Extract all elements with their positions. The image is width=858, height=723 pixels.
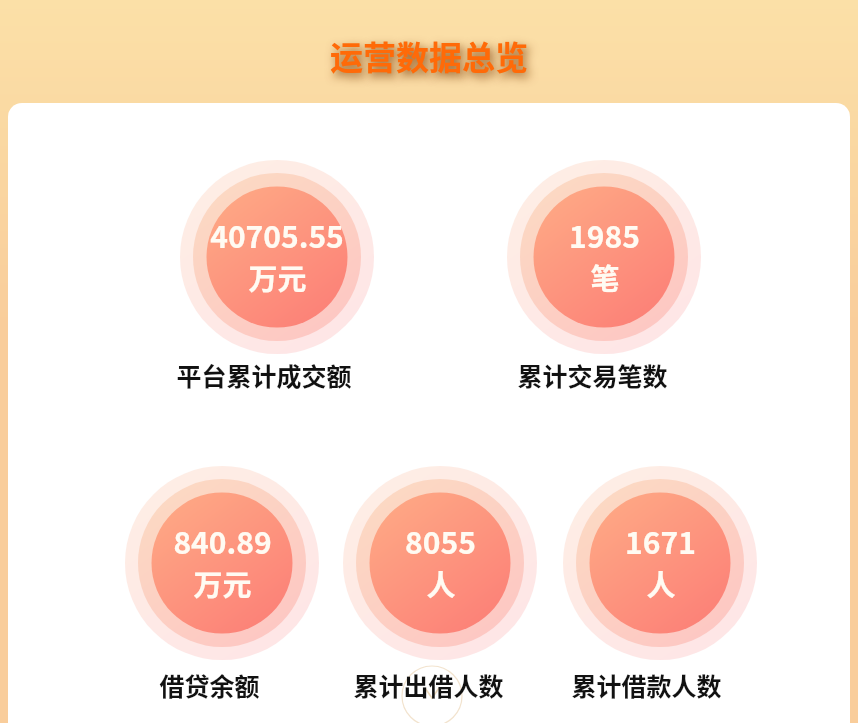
staticText: 累计借款人数 xyxy=(571,667,722,703)
button[interactable]: 40705.55 xyxy=(180,160,374,354)
staticText: 万元 xyxy=(248,256,307,298)
staticText: 累计交易笔数 xyxy=(517,357,668,393)
staticText: 人 xyxy=(646,562,676,604)
staticText: 万元 xyxy=(193,562,252,604)
staticText: 40705.55 xyxy=(210,213,344,256)
button[interactable]: 平台累计成交额 xyxy=(104,357,424,393)
button[interactable]: 借贷余额 xyxy=(49,667,369,703)
button[interactable]: 8055 xyxy=(343,466,537,660)
button[interactable]: 1671 xyxy=(563,466,757,660)
staticText: 借贷余额 xyxy=(159,667,260,703)
staticText: 8055 xyxy=(405,519,476,562)
button[interactable]: 累计出借人数 xyxy=(268,667,588,703)
button[interactable]: 累计借款人数 xyxy=(486,667,806,703)
staticText: 运营数据总览 xyxy=(330,32,528,80)
staticText: 累计出借人数 xyxy=(353,667,504,703)
staticText: 1985 xyxy=(569,213,640,256)
staticText: 840.89 xyxy=(173,519,272,562)
staticText: 笔 xyxy=(590,256,620,298)
staticText: 1671 xyxy=(625,519,696,562)
button[interactable]: 840.89 xyxy=(125,466,319,660)
staticText: 人 xyxy=(426,562,456,604)
button[interactable]: 1985 xyxy=(507,160,701,354)
button[interactable]: 累计交易笔数 xyxy=(432,357,752,393)
staticText: 平台累计成交额 xyxy=(176,357,352,393)
